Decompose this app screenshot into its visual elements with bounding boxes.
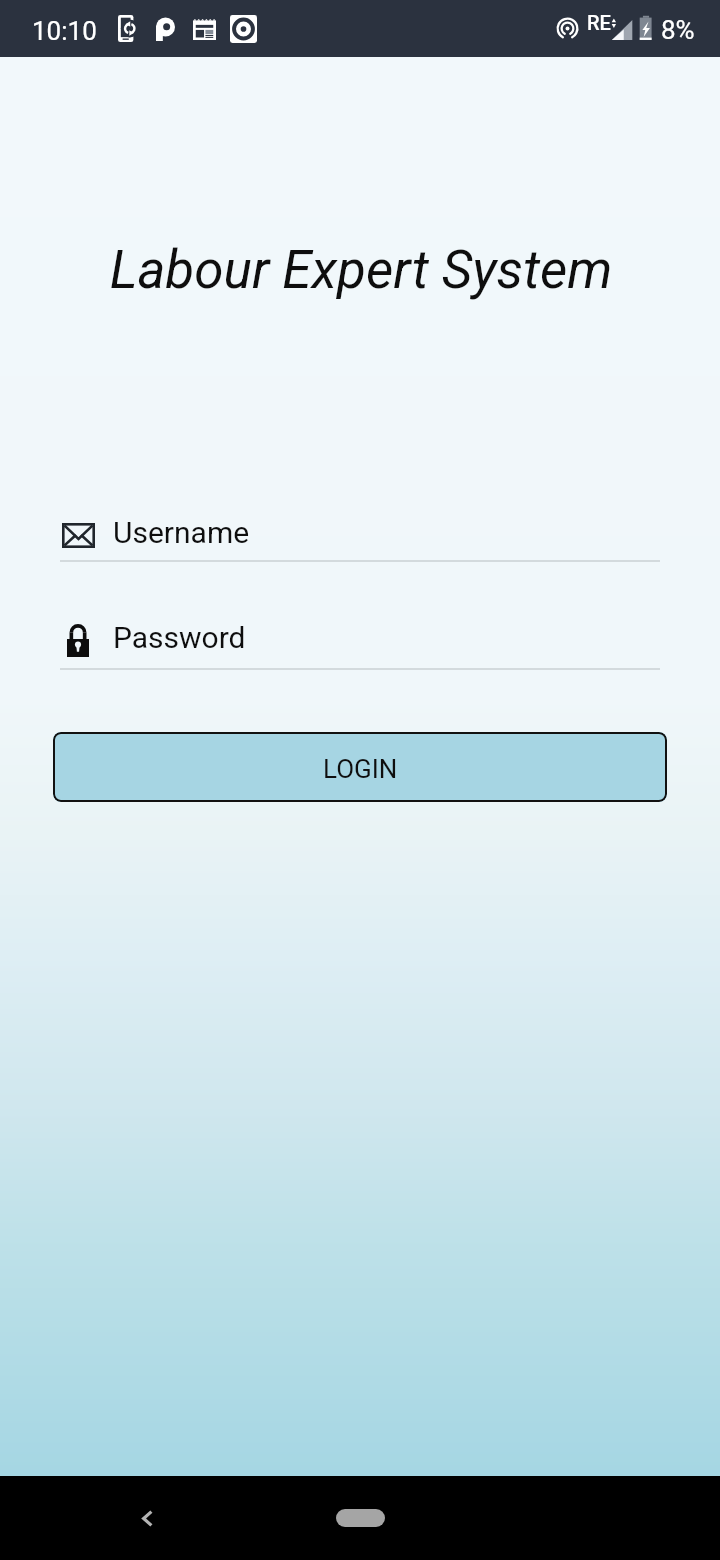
staticText: RE	[587, 11, 611, 34]
staticText: 10:10	[32, 16, 97, 46]
button[interactable]: LOGIN	[53, 732, 667, 802]
button[interactable]: Back	[120, 1491, 174, 1545]
staticText: Password	[113, 620, 246, 655]
button[interactable]: Username	[60, 512, 660, 562]
button[interactable]: Password	[60, 615, 660, 670]
button[interactable]: Home	[312, 1496, 408, 1540]
staticText: LOGIN	[323, 754, 398, 784]
staticText: Username	[113, 515, 250, 550]
staticText: 8%	[661, 15, 695, 45]
staticText: Labour Expert System	[1, 239, 720, 301]
